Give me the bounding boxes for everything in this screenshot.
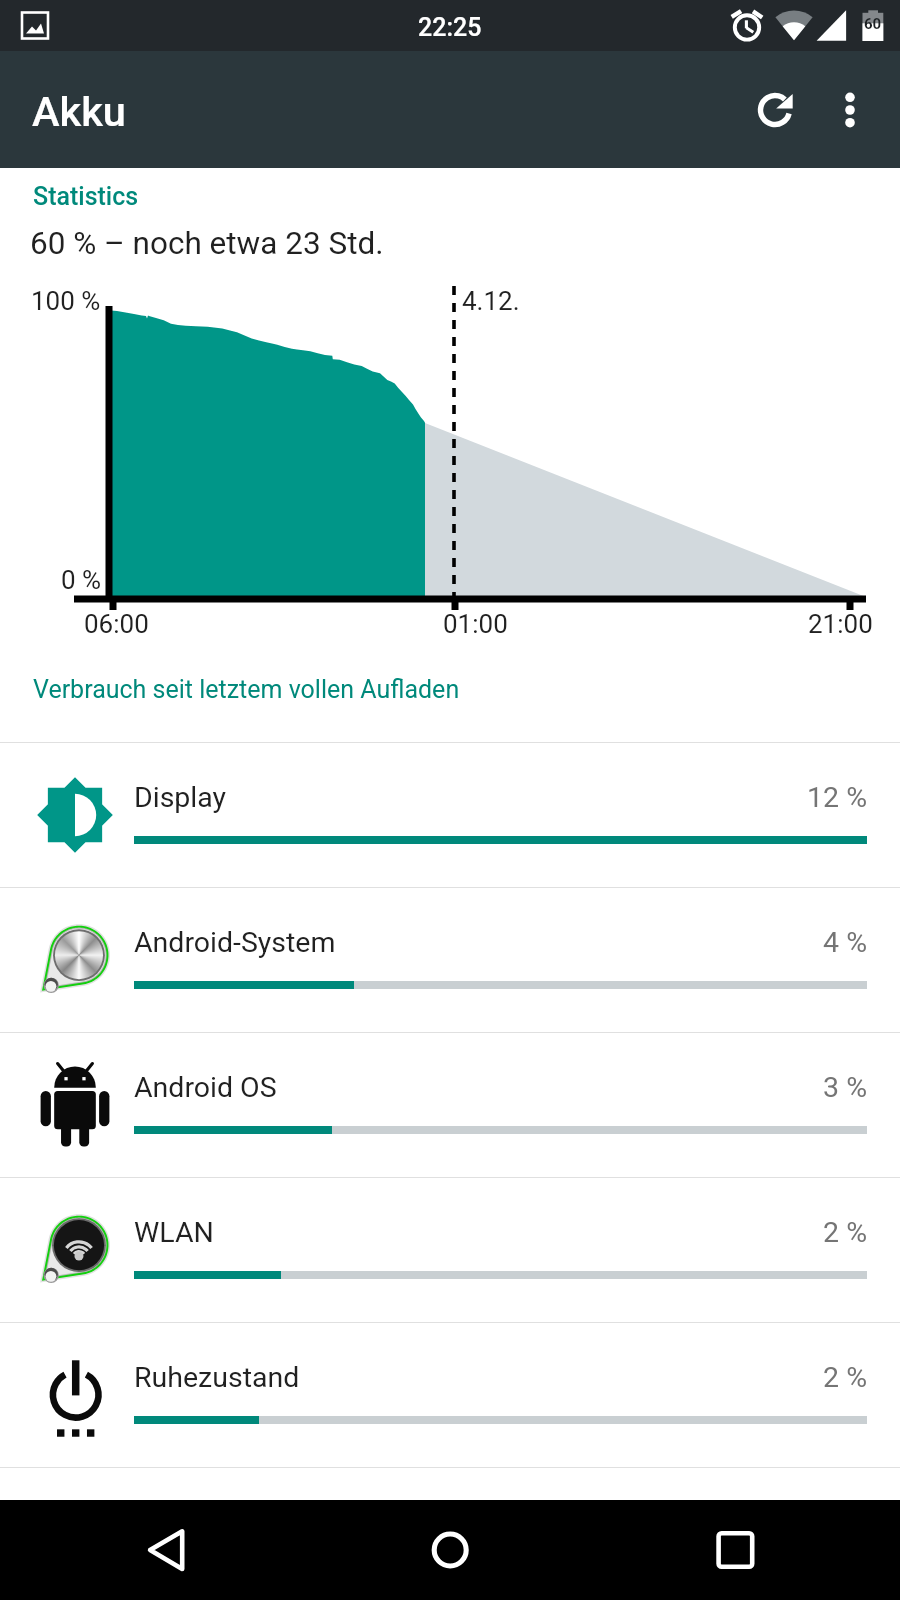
button[interactable]: Recent apps	[693, 1510, 773, 1590]
staticText: Ruhezustand	[134, 1361, 300, 1394]
staticText: Android OS	[134, 1071, 277, 1104]
staticText: 100 %	[31, 286, 101, 316]
button[interactable]: Back	[112, 1510, 192, 1590]
staticText: 12 %	[600, 781, 867, 814]
staticText: WLAN	[134, 1216, 214, 1249]
button[interactable]: Refresh	[735, 70, 815, 150]
button[interactable]: Home	[410, 1510, 490, 1590]
staticText: 01:00	[443, 609, 508, 639]
staticText: Verbrauch seit letztem vollen Aufladen	[33, 675, 460, 704]
button[interactable]: Ruhezustand	[0, 1323, 900, 1467]
button[interactable]: Display	[0, 743, 900, 887]
staticText: Android-System	[134, 926, 336, 959]
staticText: 60	[858, 15, 887, 33]
staticText: 60 % – noch etwa 23 Std.	[30, 225, 384, 262]
button[interactable]: WLAN	[0, 1178, 900, 1322]
staticText: 2 %	[600, 1216, 867, 1249]
staticText: Display	[134, 781, 227, 814]
staticText: 21:00	[808, 609, 873, 639]
staticText: 3 %	[600, 1071, 867, 1104]
staticText: Akku	[32, 87, 126, 136]
button[interactable]: Android-System	[0, 888, 900, 1032]
staticText: 4 %	[600, 926, 867, 959]
button[interactable]: More options	[810, 70, 890, 150]
staticText: Statistics	[33, 182, 139, 211]
staticText: 4.12.	[462, 286, 520, 316]
staticText: 2 %	[600, 1361, 867, 1394]
staticText: 06:00	[84, 609, 149, 639]
staticText: 22:25	[418, 13, 482, 42]
staticText: 0 %	[61, 565, 102, 595]
button[interactable]: Android OS	[0, 1033, 900, 1177]
